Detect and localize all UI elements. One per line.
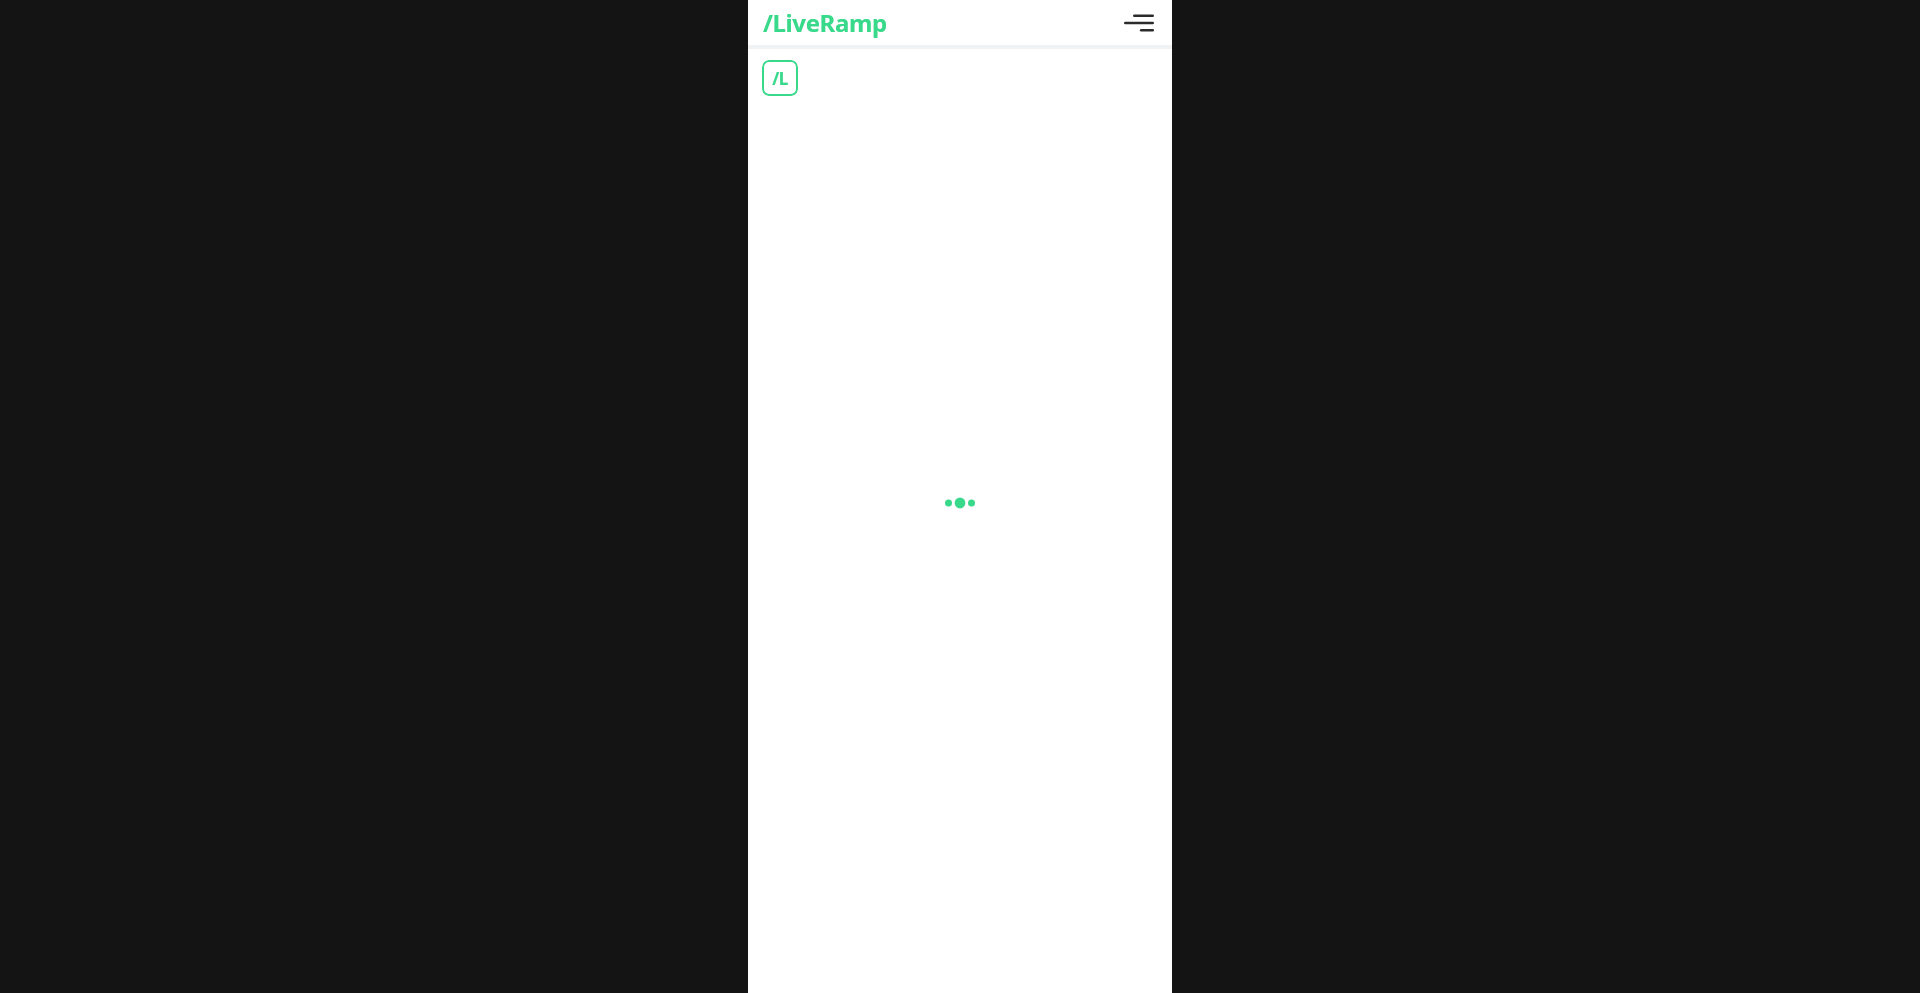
other: Loading — [940, 495, 980, 511]
button[interactable]: Open navigation menu — [1116, 0, 1162, 45]
button[interactable]: /LiveRamp — [763, 4, 887, 41]
staticText: /L — [772, 67, 788, 90]
button[interactable]: LiveRamp home — [762, 60, 798, 96]
staticText: /LiveRamp — [763, 6, 887, 39]
